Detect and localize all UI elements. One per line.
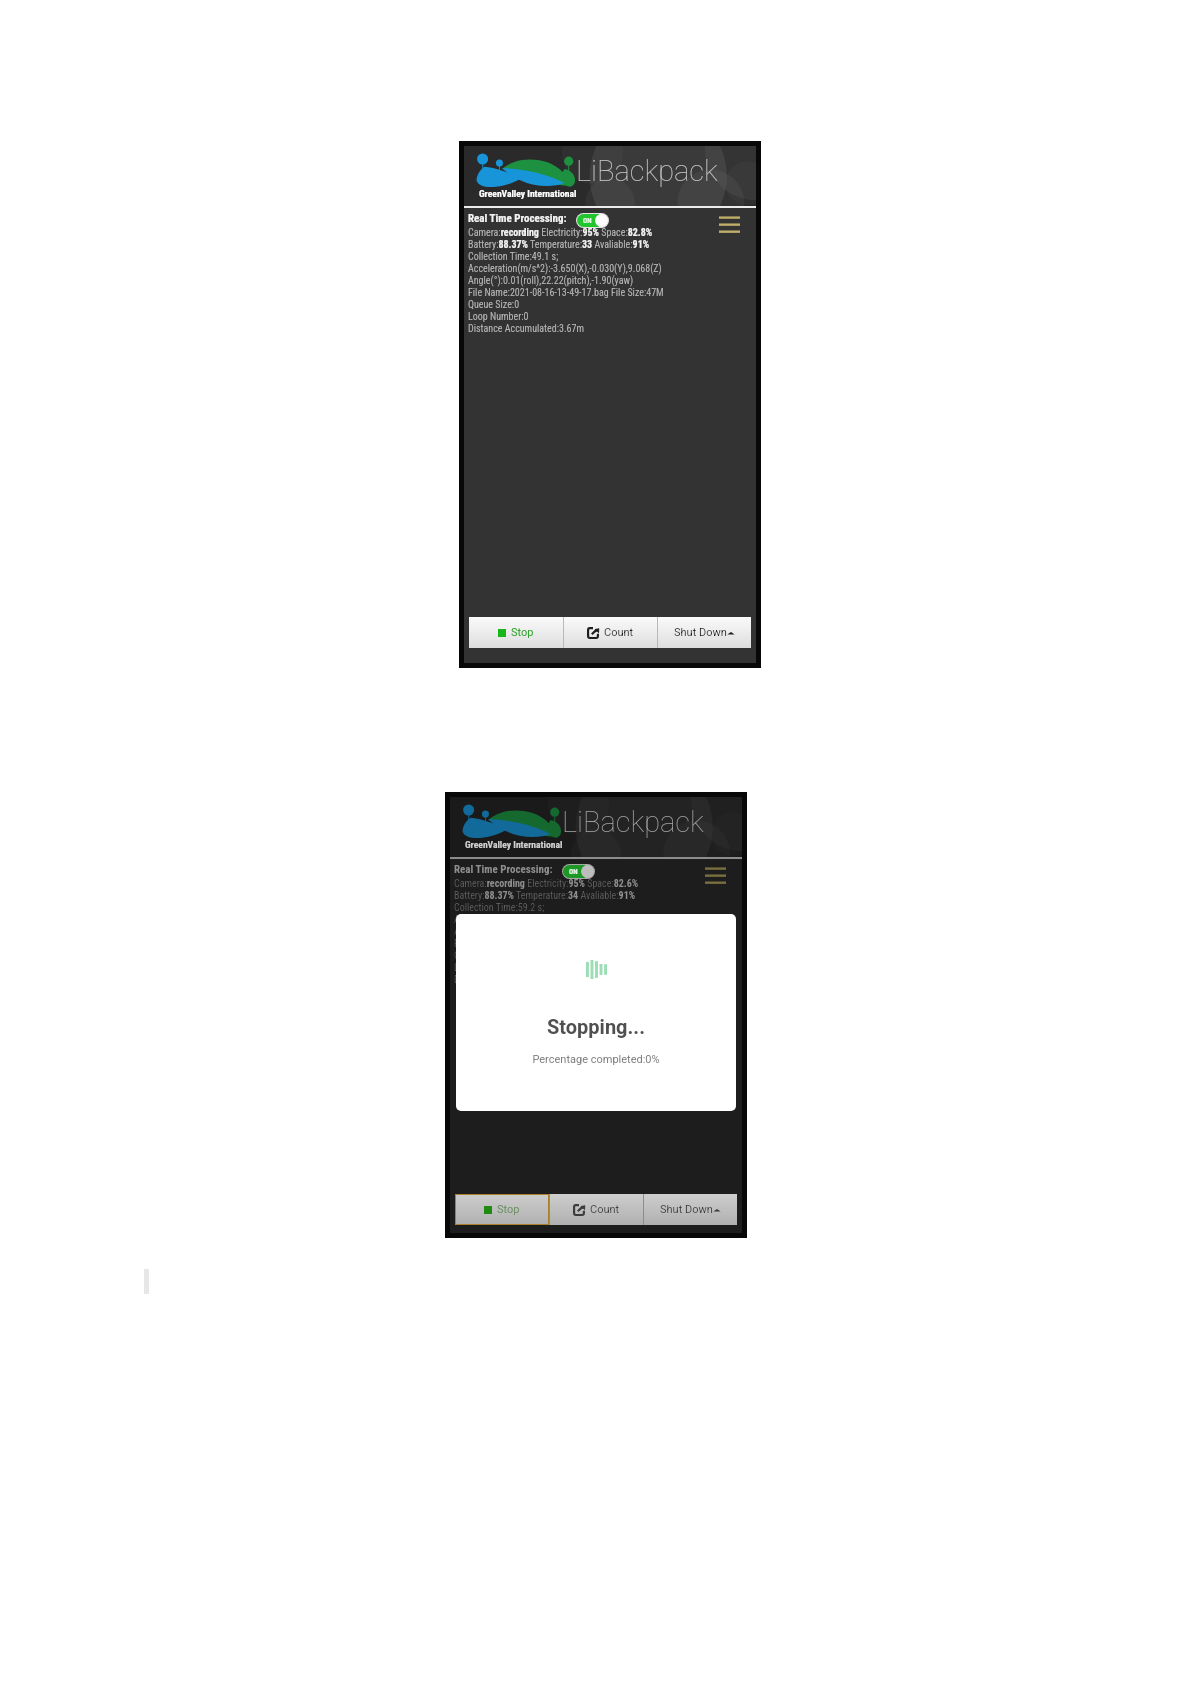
staticText: Collection Time:59.2 s; (454, 902, 545, 914)
staticText: Angle(°):0.01(roll),22.22(pitch),-1.90(y… (468, 275, 634, 287)
staticText: Shut Down (674, 626, 727, 639)
staticText: Count (590, 1203, 620, 1216)
staticText: Stopping... (547, 1015, 645, 1038)
staticText: Stop (511, 626, 534, 639)
button[interactable]: Count (550, 1194, 643, 1225)
staticText: Loop Number:0 (468, 311, 529, 323)
button[interactable]: Stop (455, 1194, 549, 1225)
button[interactable]: Shut Down (644, 1194, 737, 1225)
button[interactable]: Real Time Processing toggle, on (563, 865, 594, 878)
button[interactable]: Real Time Processing toggle, on (577, 214, 608, 227)
staticText: Shut Down (660, 1203, 713, 1216)
staticText: Stop (497, 1203, 520, 1216)
staticText: Acceleration(m/s^2):-3.650(X),-0.030(Y),… (468, 263, 662, 275)
staticText: Camera:recording Electricity:95% Space:8… (454, 878, 639, 890)
staticText: File Name:2021-08-16-13-49-17.bag File S… (454, 938, 650, 950)
button[interactable]: Shut Down (658, 617, 751, 648)
staticText: Camera:recording Electricity:95% Space:8… (468, 227, 653, 239)
staticText: Queue Size:0 (454, 950, 506, 962)
staticText: LiBackpack (576, 154, 718, 188)
staticText: LiBackpack (562, 805, 704, 839)
staticText: Real Time Processing: (454, 863, 553, 876)
staticText: File Name:2021-08-16-13-49-17.bag File S… (468, 287, 664, 299)
staticText: ON (569, 868, 578, 876)
button[interactable]: Menu (719, 216, 740, 232)
button[interactable]: Stop (469, 617, 563, 648)
staticText: Distance Accumulated:3.67m (468, 323, 584, 335)
staticText: GreenValley International (479, 188, 577, 199)
staticText: Queue Size:0 (468, 299, 520, 311)
button[interactable]: Menu (705, 867, 726, 883)
staticText: GreenValley International (465, 839, 563, 850)
staticText: Real Time Processing: (468, 212, 567, 225)
staticText: Acceleration(m/s^2):-3.670(X),-0.045(Y),… (454, 914, 648, 926)
staticText: Percentage completed:0% (532, 1053, 660, 1066)
staticText: Count (604, 626, 634, 639)
staticText: Battery:88.37% Temperature:34 Avaliable:… (454, 890, 636, 902)
staticText: Battery:88.37% Temperature:33 Avaliable:… (468, 239, 650, 251)
button[interactable]: Count (564, 617, 657, 648)
staticText: ON (583, 217, 592, 225)
staticText: Collection Time:49.1 s; (468, 251, 559, 263)
staticText: Loop Number:0 (454, 962, 515, 974)
staticText: Distance Accumulated:3.67m (454, 974, 570, 986)
staticText: Angle(°):0.07(roll),22.08(pitch),-1.56(y… (454, 926, 620, 938)
